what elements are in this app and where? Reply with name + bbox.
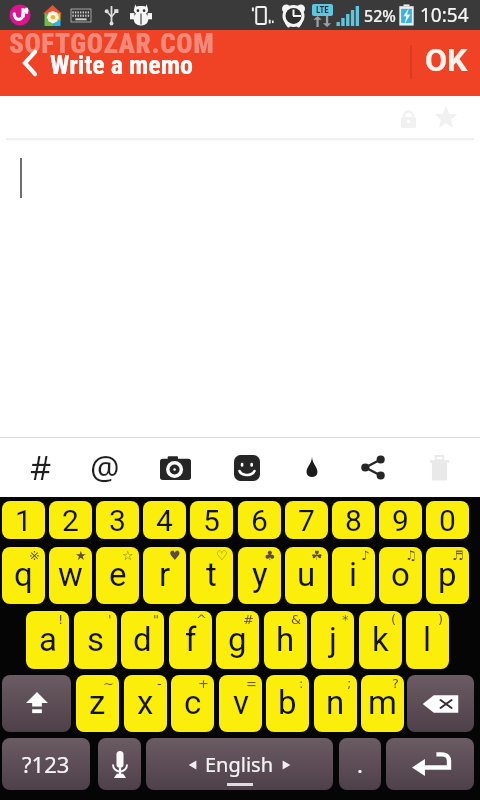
button[interactable] — [0, 30, 410, 96]
button[interactable]: 7 — [285, 501, 328, 539]
button[interactable]: 1 — [2, 501, 45, 539]
button[interactable]: ) — [406, 611, 449, 669]
button[interactable]: Hashtag — [8, 438, 74, 497]
staticText: 2 — [62, 503, 79, 538]
staticText: 1 — [15, 503, 32, 538]
button[interactable]: Emoji — [214, 438, 280, 497]
staticText: l — [423, 620, 432, 659]
staticText: d — [133, 620, 152, 659]
button[interactable]: ☘ — [285, 547, 328, 604]
button[interactable]: 4 — [143, 501, 186, 539]
button[interactable]: ♡ — [190, 547, 233, 604]
button[interactable]: Enter — [386, 738, 474, 790]
button[interactable]: . — [339, 738, 381, 790]
button[interactable]: ~ — [76, 675, 119, 732]
button[interactable]: Voice input — [98, 738, 141, 790]
staticText: = — [246, 676, 257, 691]
button[interactable]: Shift — [2, 675, 71, 732]
staticText: y — [252, 555, 268, 594]
button[interactable]: # — [216, 611, 259, 669]
staticText: m — [368, 683, 397, 722]
staticText: # — [30, 445, 52, 490]
button[interactable]: ★ — [49, 547, 92, 604]
staticText: ♥ — [169, 548, 181, 563]
button[interactable]: ! — [26, 611, 69, 669]
button[interactable]: ♪ — [332, 547, 375, 604]
staticText: LTE — [316, 5, 329, 16]
staticText: - — [157, 676, 162, 691]
staticText: : — [299, 676, 304, 691]
button[interactable]: 0 — [426, 501, 469, 539]
staticText: & — [291, 612, 302, 627]
staticText: Write a memo — [50, 50, 193, 80]
button[interactable]: 5 — [190, 501, 233, 539]
staticText: o — [391, 555, 410, 594]
button[interactable]: 6 — [238, 501, 281, 539]
button[interactable]: English — [146, 738, 333, 790]
button[interactable]: 3 — [96, 501, 139, 539]
button[interactable]: * — [311, 611, 354, 669]
button[interactable]: & — [264, 611, 307, 669]
staticText: p — [438, 555, 457, 594]
staticText: 3 — [109, 503, 126, 538]
staticText: t — [206, 555, 217, 594]
button[interactable]: ?123 — [2, 738, 90, 790]
button[interactable]: 8 — [332, 501, 375, 539]
staticText: j — [329, 620, 337, 659]
button[interactable]: Delete — [406, 438, 472, 497]
button[interactable]: + — [171, 675, 214, 732]
button[interactable]: 2 — [49, 501, 92, 539]
button[interactable]: OK — [412, 30, 480, 96]
button[interactable]: ? — [361, 675, 404, 732]
staticText: i — [349, 555, 358, 594]
staticText: b — [278, 683, 297, 722]
button[interactable]: ( — [359, 611, 402, 669]
staticText: f — [185, 620, 197, 659]
button[interactable]: ^ — [169, 611, 212, 669]
other: Favorite — [433, 105, 459, 130]
button[interactable]: Lock — [0, 96, 480, 437]
staticText: ; — [347, 676, 352, 691]
button[interactable]: 9 — [379, 501, 422, 539]
staticText: ) — [438, 612, 444, 627]
staticText: ^ — [196, 612, 207, 627]
button[interactable]: Ink — [279, 438, 345, 497]
button[interactable]: ※ — [2, 547, 45, 604]
staticText: + — [198, 676, 209, 691]
staticText: ※ — [29, 548, 40, 563]
button[interactable]: ♣ — [238, 547, 281, 604]
staticText: ! — [58, 612, 64, 627]
button[interactable]: - — [124, 675, 167, 732]
staticText: ?123 — [22, 749, 70, 779]
staticText: v — [233, 683, 249, 722]
staticText: 52% — [364, 5, 396, 27]
staticText: ♬ — [452, 548, 464, 563]
button[interactable]: Camera — [142, 438, 208, 497]
staticText: ( — [391, 612, 397, 627]
button[interactable]: Mention — [72, 438, 138, 497]
button[interactable]: ; — [314, 675, 357, 732]
button[interactable]: ☆ — [96, 547, 139, 604]
staticText: w — [58, 555, 83, 594]
button[interactable]: " — [121, 611, 164, 669]
staticText: k — [372, 620, 389, 659]
button[interactable]: Backspace — [407, 675, 474, 732]
staticText: 10:54 — [420, 2, 469, 28]
staticText: c — [184, 683, 202, 722]
staticText: ♡ — [216, 548, 228, 563]
button[interactable]: ♥ — [143, 547, 186, 604]
button[interactable]: ♬ — [426, 547, 469, 604]
button[interactable]: ♫ — [379, 547, 422, 604]
staticText: ♫ — [405, 548, 417, 563]
staticText: ? — [392, 676, 399, 691]
staticText: 5 — [203, 503, 220, 538]
button[interactable]: = — [219, 675, 262, 732]
staticText: g — [228, 620, 247, 659]
staticText: ☆ — [122, 548, 134, 563]
button[interactable]: Share — [340, 438, 406, 497]
staticText: ' — [108, 612, 112, 627]
button[interactable]: ' — [74, 611, 117, 669]
staticText: SOFTGOZAR.COM — [9, 28, 215, 60]
button[interactable]: : — [266, 675, 309, 732]
staticText: ☘ — [311, 548, 323, 563]
